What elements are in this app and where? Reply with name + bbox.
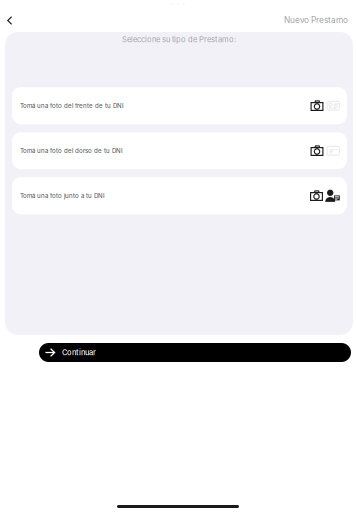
staticText: Nuevo Prestamo xyxy=(284,15,348,25)
button[interactable]: Tomá una foto del dorso de tu DNI xyxy=(12,132,347,169)
staticText: Tomá una foto del frente de tu DNI xyxy=(20,102,124,109)
button[interactable]: Tomá una foto junto a tu DNI xyxy=(12,177,347,214)
staticText: Seleccione su tipo de Prestamo: xyxy=(122,35,236,44)
staticText: Tomá una foto del dorso de tu DNI xyxy=(20,147,123,154)
button[interactable]: Back xyxy=(0,8,24,30)
button[interactable]: Continuar xyxy=(39,343,351,362)
staticText: Continuar xyxy=(62,348,96,357)
button[interactable]: Tomá una foto del frente de tu DNI xyxy=(12,87,347,124)
staticText: Tomá una foto junto a tu DNI xyxy=(20,192,105,199)
